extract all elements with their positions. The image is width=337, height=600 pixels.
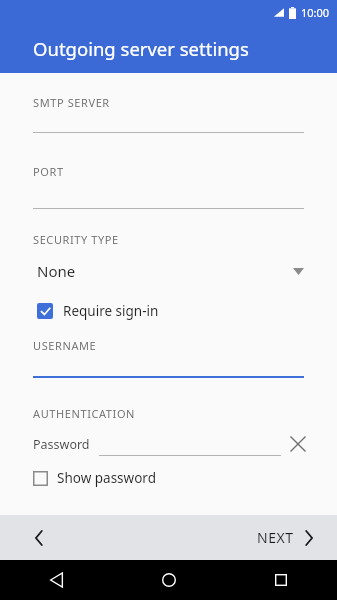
staticText: 10:00 bbox=[301, 5, 330, 20]
staticText: Outgoing server settings bbox=[33, 36, 249, 61]
button[interactable]: Require sign-in bbox=[0, 299, 337, 323]
staticText: NEXT bbox=[257, 528, 294, 547]
staticText: PORT bbox=[33, 164, 64, 179]
button[interactable]: Back bbox=[0, 560, 113, 600]
staticText: Require sign-in bbox=[63, 302, 159, 320]
button[interactable]: Show password bbox=[0, 466, 337, 490]
staticText: SMTP SERVER bbox=[33, 95, 110, 110]
button[interactable]: Recent apps bbox=[225, 560, 337, 600]
button[interactable]: Back bbox=[24, 523, 54, 553]
staticText: Password bbox=[33, 436, 90, 453]
button[interactable]: Clear password bbox=[289, 435, 307, 453]
button[interactable]: None bbox=[0, 257, 337, 285]
button[interactable]: Home bbox=[113, 560, 225, 600]
staticText: None bbox=[37, 261, 76, 281]
staticText: USERNAME bbox=[33, 338, 97, 353]
staticText: SECURITY TYPE bbox=[33, 232, 119, 247]
staticText: AUTHENTICATION bbox=[33, 406, 136, 421]
button[interactable]: NEXT bbox=[241, 520, 337, 555]
staticText: Show password bbox=[57, 469, 156, 487]
